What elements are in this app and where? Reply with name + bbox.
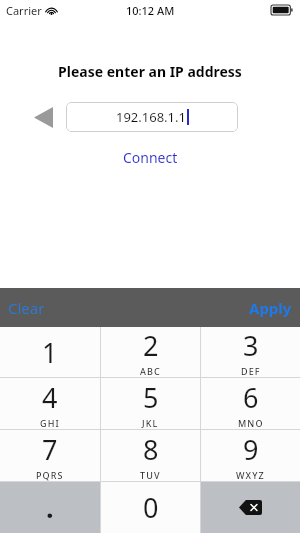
staticText: DEF [241, 365, 261, 377]
button[interactable]: 6 [201, 378, 300, 429]
staticText: Carrier [6, 3, 42, 18]
button[interactable]: 3 [201, 327, 300, 377]
button[interactable]: 9 [201, 430, 300, 481]
staticText: Connect [123, 148, 178, 167]
staticText: 7 [42, 431, 58, 468]
staticText: PQRS [36, 469, 64, 481]
button[interactable]: Clear [0, 288, 53, 327]
staticText: ABC [140, 365, 161, 377]
button[interactable]: 7 [0, 430, 100, 481]
button[interactable]: Previous [32, 104, 54, 130]
staticText: Please enter an IP address [0, 62, 300, 81]
button[interactable]: 2 [101, 327, 200, 377]
staticText: 2 [143, 327, 159, 364]
staticText: WXYZ [236, 469, 265, 481]
staticText: 8 [143, 431, 159, 468]
button[interactable]: 5 [101, 378, 200, 429]
button[interactable]: Backspace [201, 482, 300, 533]
staticText: 4 [42, 379, 58, 416]
staticText: JKL [142, 417, 159, 429]
staticText: TUV [140, 469, 161, 481]
staticText: 3 [243, 327, 259, 364]
staticText: GHI [40, 417, 60, 429]
button[interactable]: 1 [0, 327, 100, 377]
staticText: . [46, 489, 54, 526]
button[interactable]: 4 [0, 378, 100, 429]
staticText: Clear [8, 298, 45, 318]
staticText: 1 [42, 334, 58, 371]
staticText: 6 [243, 379, 259, 416]
button[interactable]: 192.168.1.1 [66, 102, 238, 132]
staticText: 10:12 AM [126, 3, 175, 18]
staticText: 9 [243, 431, 259, 468]
staticText: 0 [143, 489, 159, 526]
button[interactable]: 8 [101, 430, 200, 481]
staticText: 192.168.1.1 [116, 108, 186, 126]
staticText: Apply [249, 298, 292, 318]
button[interactable]: Apply [241, 288, 300, 327]
button[interactable]: . [0, 482, 100, 533]
button[interactable]: Connect [115, 146, 186, 169]
staticText: 5 [143, 379, 159, 416]
staticText: MNO [238, 417, 264, 429]
button[interactable]: 0 [101, 482, 200, 533]
